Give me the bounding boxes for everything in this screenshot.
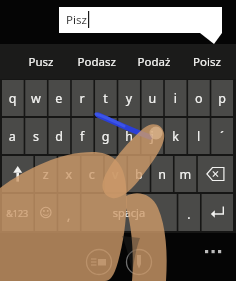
- button[interactable]: Polish keyboard with gesture typing: [0, 0, 236, 281]
